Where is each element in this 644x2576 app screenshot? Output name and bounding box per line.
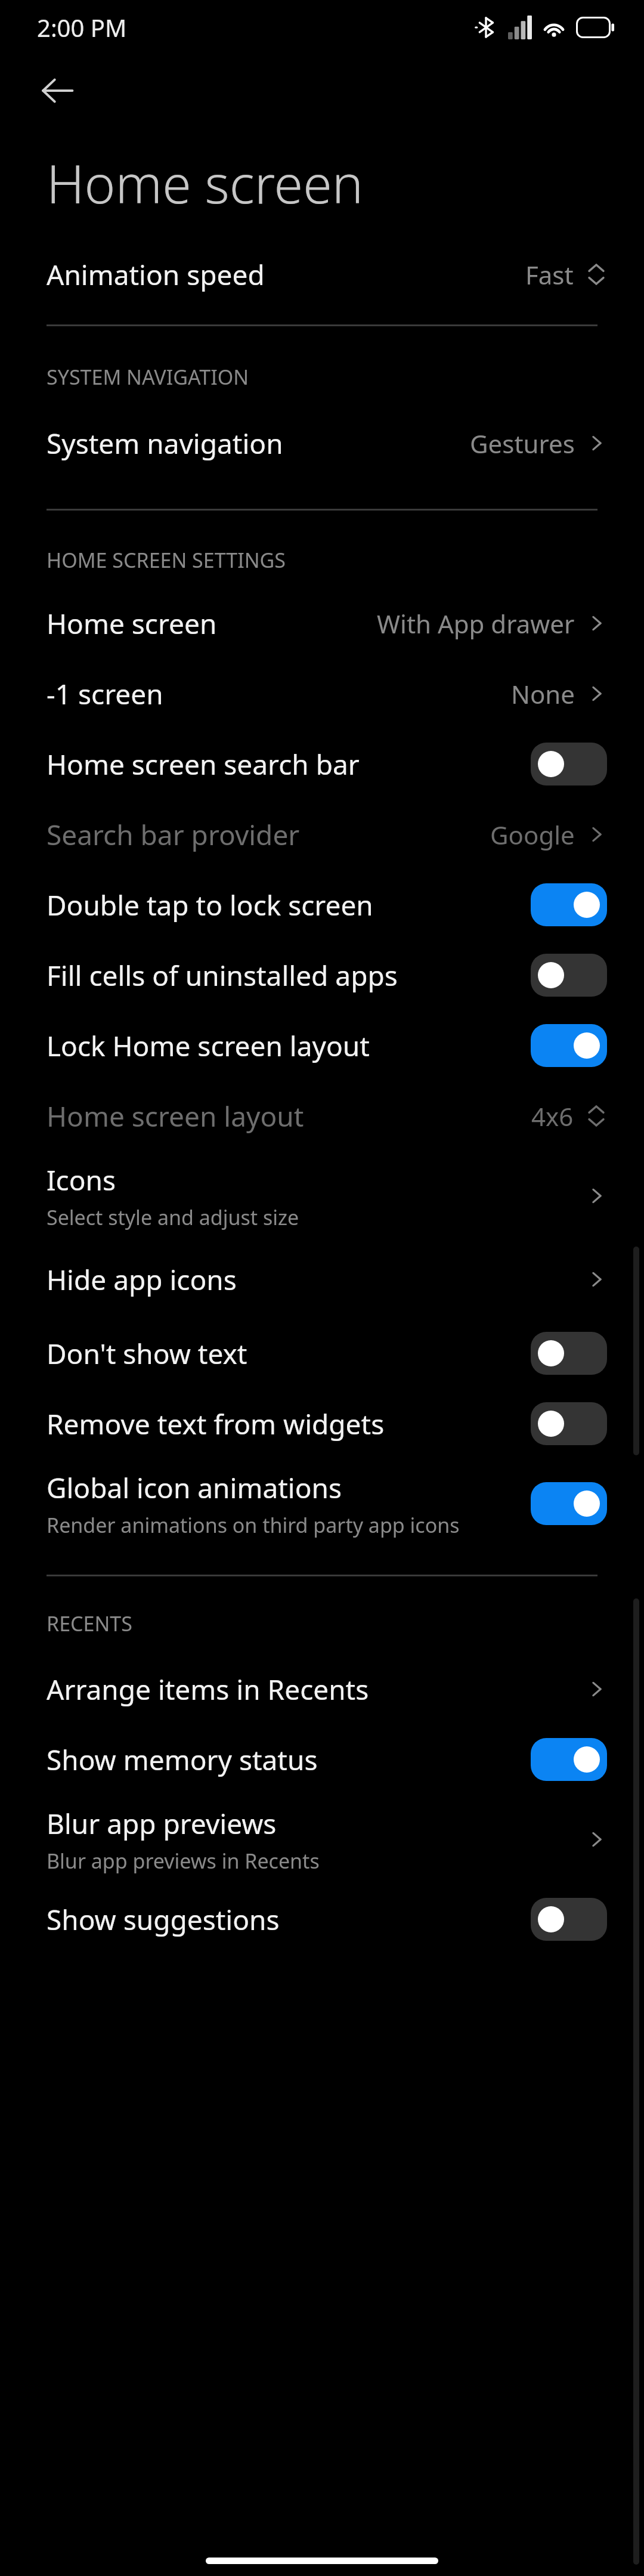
- staticText: Remove text from widgets: [47, 1405, 385, 1443]
- staticText: Show memory status: [47, 1741, 318, 1779]
- staticText: System navigation: [47, 425, 283, 462]
- staticText: Blur app previews: [47, 1805, 277, 1842]
- button[interactable]: Don't show text: [0, 1318, 644, 1388]
- button[interactable]: Home screen: [0, 588, 644, 658]
- staticText: 4x6: [531, 1099, 574, 1133]
- staticText: Select style and adjust size: [47, 1204, 299, 1231]
- button[interactable]: Fill cells of uninstalled apps: [0, 940, 644, 1010]
- button[interactable]: Remove text from widgets: [0, 1388, 644, 1459]
- staticText: Double tap to lock screen: [47, 886, 373, 924]
- staticText: Home screen layout: [47, 1097, 304, 1135]
- staticText: Lock Home screen layout: [47, 1027, 370, 1065]
- staticText: Global icon animations: [47, 1469, 342, 1507]
- button[interactable]: System navigation: [0, 409, 644, 478]
- button[interactable]: Hide app icons: [0, 1241, 644, 1318]
- button[interactable]: Blur app previews: [0, 1795, 644, 1884]
- button[interactable]: Home screen search bar: [0, 729, 644, 799]
- staticText: Hide app icons: [47, 1261, 237, 1298]
- button[interactable]: Show memory status: [0, 1724, 644, 1795]
- button[interactable]: Home screen layout: [0, 1081, 644, 1151]
- button[interactable]: Global icon animations: [0, 1459, 644, 1548]
- staticText: Gestures: [470, 426, 575, 460]
- staticText: Fast: [525, 258, 574, 292]
- button[interactable]: -1 screen: [0, 658, 644, 729]
- button[interactable]: Search bar provider: [0, 799, 644, 870]
- staticText: Don't show text: [47, 1335, 247, 1372]
- staticText: Show suggestions: [47, 1901, 280, 1938]
- staticText: 2:00 PM: [37, 11, 127, 44]
- staticText: RECENTS: [47, 1610, 132, 1637]
- staticText: SYSTEM NAVIGATION: [47, 363, 249, 391]
- staticText: Search bar provider: [47, 816, 300, 853]
- staticText: None: [511, 677, 575, 711]
- staticText: Fill cells of uninstalled apps: [47, 957, 398, 994]
- staticText: Animation speed: [47, 256, 265, 293]
- staticText: Icons: [47, 1161, 116, 1199]
- staticText: Arrange items in Recents: [47, 1671, 369, 1708]
- staticText: Blur app previews in Recents: [47, 1847, 320, 1875]
- staticText: HOME SCREEN SETTINGS: [47, 546, 286, 574]
- button[interactable]: Back: [29, 62, 86, 119]
- staticText: With App drawer: [377, 607, 575, 641]
- staticText: Render animations on third party app ico…: [47, 1511, 460, 1539]
- staticText: Home screen: [47, 147, 364, 219]
- button[interactable]: Icons: [0, 1151, 644, 1241]
- staticText: Home screen search bar: [47, 746, 360, 783]
- button[interactable]: Double tap to lock screen: [0, 870, 644, 940]
- staticText: Home screen: [47, 605, 217, 642]
- button[interactable]: Animation speed: [0, 240, 644, 309]
- button[interactable]: Show suggestions: [0, 1884, 644, 1955]
- staticText: -1 screen: [47, 675, 163, 713]
- button[interactable]: Lock Home screen layout: [0, 1010, 644, 1081]
- staticText: Google: [490, 818, 575, 852]
- button[interactable]: Arrange items in Recents: [0, 1654, 644, 1724]
